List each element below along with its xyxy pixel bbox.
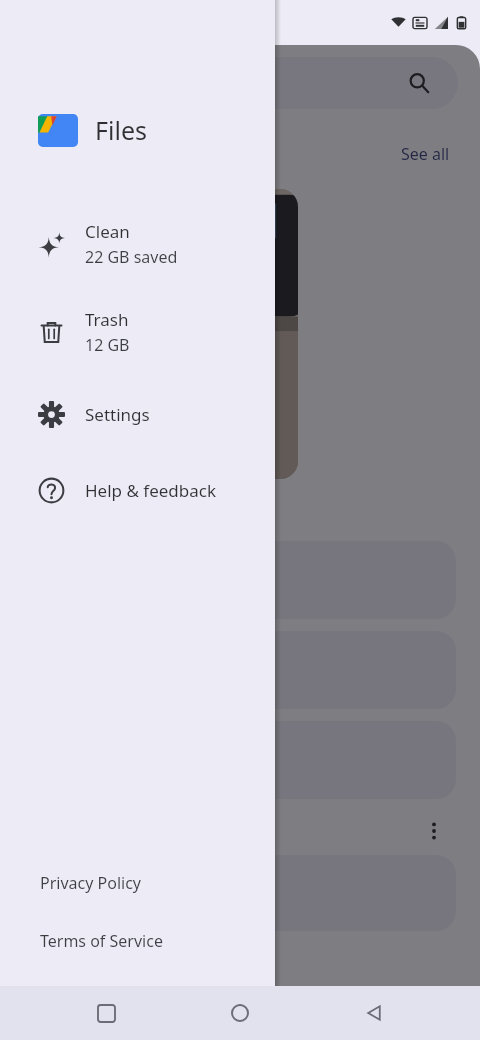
button[interactable]: Terms of Service xyxy=(38,926,165,956)
button[interactable]: See all xyxy=(395,137,456,171)
button[interactable]: Home xyxy=(212,986,268,1040)
button[interactable]: Recent apps xyxy=(78,986,134,1040)
button[interactable]: Search xyxy=(16,57,458,109)
staticText: Terms of Service xyxy=(40,930,163,952)
staticText: Safe folder xyxy=(110,882,197,905)
button[interactable]: Help & feedback xyxy=(0,468,275,512)
button[interactable]: Back xyxy=(346,986,402,1040)
staticText: 22 GB saved xyxy=(85,246,178,268)
button[interactable]: Fundamental Analysis xyxy=(0,189,140,479)
staticText: Privacy Policy xyxy=(40,872,141,894)
button[interactable] xyxy=(220,189,298,479)
button[interactable]: Audio xyxy=(16,631,456,709)
staticText: Clean xyxy=(85,220,130,243)
button[interactable]: Safe folder xyxy=(16,855,456,931)
button[interactable]: More options xyxy=(424,821,444,841)
button[interactable]: Images xyxy=(16,541,456,619)
staticText: Help & feedback xyxy=(85,479,217,502)
button[interactable]: Clean xyxy=(0,216,275,272)
button[interactable]: Settings xyxy=(0,392,275,436)
staticText: See all xyxy=(401,143,450,165)
button[interactable]: Trash xyxy=(0,304,275,360)
button[interactable]: Apps xyxy=(16,721,456,799)
staticText: Fundamental Analysis xyxy=(0,203,61,251)
staticText: 12 GB xyxy=(85,334,130,356)
staticText: Settings xyxy=(85,403,150,426)
staticText: Trash xyxy=(85,308,129,331)
button[interactable]: Privacy Policy xyxy=(38,868,143,898)
staticText: Files xyxy=(95,113,147,147)
